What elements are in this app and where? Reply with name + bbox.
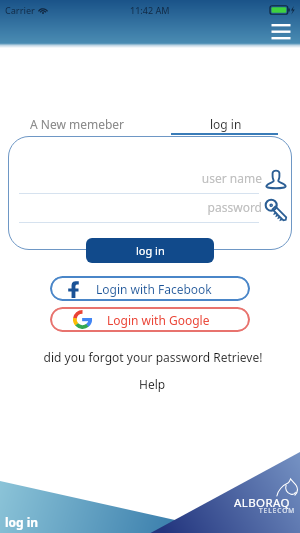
staticText: TELECOM [259, 506, 296, 515]
staticText: log in [210, 116, 242, 132]
button[interactable]: Menu [268, 22, 294, 42]
staticText: log in [5, 514, 39, 530]
button[interactable]: log in [86, 238, 214, 263]
staticText: Help [139, 376, 166, 392]
staticText: Login with Facebook [96, 281, 212, 297]
staticText: A New memeber [30, 116, 125, 132]
button[interactable]: Help [122, 375, 182, 393]
staticText: Login with Google [107, 312, 210, 328]
staticText: did you forgot your password Retrieve! [3, 349, 300, 365]
staticText: log in [136, 243, 165, 258]
staticText: Carrier [5, 4, 35, 16]
button[interactable]: A New memeber [2, 112, 152, 135]
button[interactable]: Login with Facebook [50, 276, 250, 301]
staticText: ALBORAQ [234, 495, 290, 511]
staticText: password [140, 199, 262, 215]
button[interactable]: Login with Google [50, 307, 250, 332]
staticText: 11:42 AM [130, 4, 170, 16]
button[interactable]: log in [159, 112, 293, 135]
staticText: user name [140, 170, 262, 186]
